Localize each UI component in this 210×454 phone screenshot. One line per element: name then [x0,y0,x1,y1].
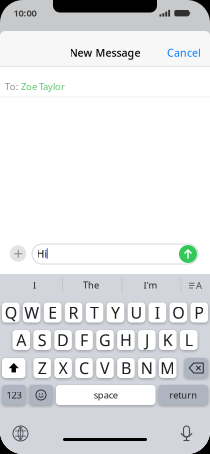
button[interactable]: H [117,330,135,350]
button[interactable]: Predictive text [188,275,204,295]
staticText: H [120,329,132,351]
button[interactable]: I [6,275,62,295]
button[interactable]: O [169,302,187,322]
staticText: New Message [69,45,140,60]
staticText: C [79,357,89,379]
button[interactable]: F [75,330,93,350]
button[interactable]: Emoji [29,385,53,405]
staticText: G [99,329,111,351]
button[interactable]: V [96,358,114,378]
staticText: D [57,329,69,351]
button[interactable]: I [149,302,166,322]
staticText: R [69,302,79,323]
button[interactable]: U [128,302,145,322]
button[interactable]: Cancel [164,42,204,62]
staticText: 123 [6,389,21,401]
button[interactable]: space [56,385,155,405]
staticText: T [90,302,99,323]
staticText: V [100,357,110,379]
staticText: M [160,357,175,379]
staticText: Hi [36,246,47,261]
button[interactable]: Send [179,245,197,263]
staticText: A [196,279,202,292]
staticText: X [59,357,68,379]
button[interactable]: C [75,358,93,378]
button[interactable]: P [190,302,208,322]
staticText: E [48,302,57,323]
staticText: O [172,302,184,323]
button[interactable]: Dictation [178,424,194,444]
button[interactable]: Z [33,358,51,378]
button[interactable]: Next keyboard [10,423,30,443]
button[interactable]: S [33,330,51,350]
staticText: return [169,389,197,401]
button[interactable]: E [44,302,61,322]
button[interactable]: Shift [2,358,25,378]
staticText: The [83,279,99,291]
staticText: N [141,357,153,379]
staticText: U [130,302,142,323]
button[interactable]: W [23,302,40,322]
staticText: I'm [143,279,157,291]
staticText: Zoe Taylor [21,80,65,93]
button[interactable]: N [138,358,156,378]
button[interactable]: X [54,358,72,378]
staticText: S [38,329,47,351]
staticText: B [121,357,131,379]
button[interactable]: return [158,385,208,405]
button[interactable]: L [180,330,197,350]
button[interactable]: A [12,330,30,350]
button[interactable]: 123 [2,385,26,405]
button[interactable]: G [96,330,114,350]
staticText: L [185,329,193,351]
button[interactable]: I'm [122,275,178,295]
staticText: 10:00 [13,7,36,19]
staticText: I [33,279,36,291]
staticText: K [163,329,173,351]
staticText: J [145,329,149,351]
staticText: Z [38,357,47,379]
button[interactable]: B [117,358,135,378]
button[interactable]: Q [2,302,19,322]
button[interactable]: D [54,330,72,350]
staticText: I [155,302,160,323]
staticText: A [16,329,26,351]
button[interactable]: T [86,302,103,322]
staticText: P [194,302,204,323]
button[interactable]: The [63,275,119,295]
staticText: Y [111,302,120,323]
staticText: Q [5,302,17,323]
button[interactable]: M [159,358,176,378]
button[interactable]: R [65,302,82,322]
staticText: Cancel [167,45,201,60]
button[interactable]: Zoe Taylor [21,79,65,93]
staticText: W [24,302,39,323]
staticText: space [94,389,118,401]
button[interactable]: J [138,330,156,350]
staticText: F [80,329,88,351]
staticText: To: [5,80,19,93]
button[interactable]: Add attachment [10,245,26,262]
button[interactable]: Y [107,302,124,322]
button[interactable]: Delete [184,358,208,378]
button[interactable]: K [159,330,177,350]
